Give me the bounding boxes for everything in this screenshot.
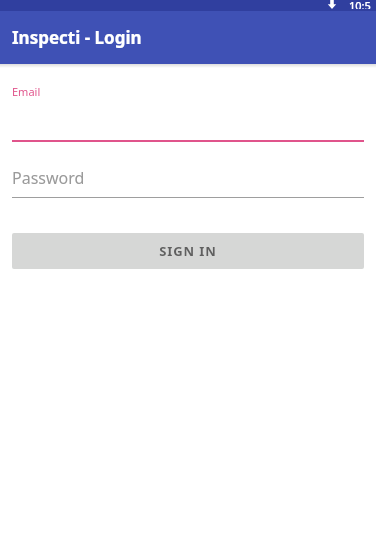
staticText: 10:5 (349, 0, 371, 9)
staticText: SIGN IN (159, 242, 217, 260)
button[interactable]: SIGN IN (12, 233, 364, 269)
button[interactable]: Password (12, 165, 364, 198)
staticText: Email (12, 84, 41, 99)
button[interactable]: Email (12, 80, 364, 142)
staticText: Password (12, 167, 85, 189)
staticText: Inspecti - Login (12, 26, 142, 49)
